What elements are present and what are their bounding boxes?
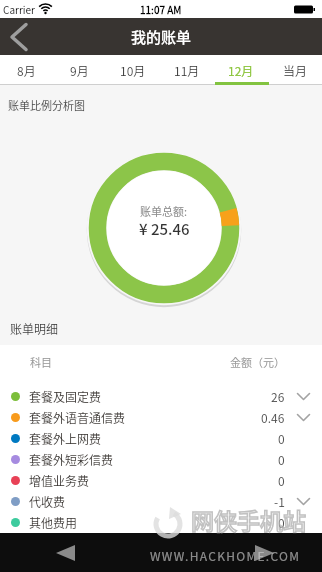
- button[interactable]: 其他费用: [0, 512, 322, 533]
- staticText: WWW.HACKHOME.COM: [150, 547, 301, 564]
- button[interactable]: 套餐外短彩信费: [0, 449, 322, 470]
- staticText: 套餐外短彩信费: [29, 451, 114, 468]
- staticText: 26: [271, 388, 285, 405]
- staticText: 套餐外语音通信费: [29, 409, 126, 426]
- button[interactable]: 套餐及固定费: [0, 386, 322, 407]
- staticText: 当月: [283, 62, 308, 79]
- staticText: 网侠手机站: [191, 503, 306, 536]
- staticText: 我的账单: [131, 26, 192, 48]
- staticText: 0.46: [261, 409, 285, 426]
- staticText: 0: [278, 472, 285, 489]
- staticText: -1: [274, 493, 285, 510]
- staticText: 账单明细: [10, 320, 59, 337]
- button[interactable]: 代收费: [0, 491, 322, 512]
- staticText: 账单比例分析图: [8, 97, 85, 113]
- staticText: 套餐外上网费: [29, 430, 102, 447]
- button[interactable]: 增值业务费: [0, 470, 322, 491]
- button[interactable]: 套餐外语音通信费: [0, 407, 322, 428]
- staticText: 11:07 AM: [140, 2, 182, 16]
- staticText: 8月: [17, 62, 36, 79]
- staticText: 其他费用: [29, 514, 78, 531]
- button[interactable]: 当月: [268, 55, 322, 85]
- button[interactable]: 11月: [160, 55, 214, 85]
- staticText: 0: [278, 514, 285, 531]
- button[interactable]: 10月: [106, 55, 160, 85]
- staticText: 金额（元）: [230, 354, 285, 370]
- staticText: 0: [278, 430, 285, 447]
- staticText: 代收费: [29, 493, 66, 510]
- staticText: 10月: [120, 62, 146, 79]
- staticText: 账单总额:: [140, 203, 188, 219]
- staticText: 0: [278, 451, 285, 468]
- staticText: ¥ 25.46: [139, 218, 190, 240]
- button[interactable]: [0, 18, 37, 55]
- staticText: 科目: [30, 354, 52, 370]
- button[interactable]: [45, 533, 85, 572]
- button[interactable]: [244, 533, 284, 572]
- button[interactable]: 套餐外上网费: [0, 428, 322, 449]
- staticText: Carrier: [3, 2, 35, 16]
- staticText: 增值业务费: [29, 472, 90, 489]
- staticText: 网侠手机站: [191, 503, 306, 536]
- staticText: 11月: [174, 62, 200, 79]
- button[interactable]: 8月: [0, 55, 53, 85]
- staticText: 套餐及固定费: [29, 388, 102, 405]
- button[interactable]: 9月: [53, 55, 106, 85]
- staticText: 12月: [228, 62, 254, 79]
- staticText: 9月: [70, 62, 89, 79]
- button[interactable]: 12月: [214, 55, 268, 85]
